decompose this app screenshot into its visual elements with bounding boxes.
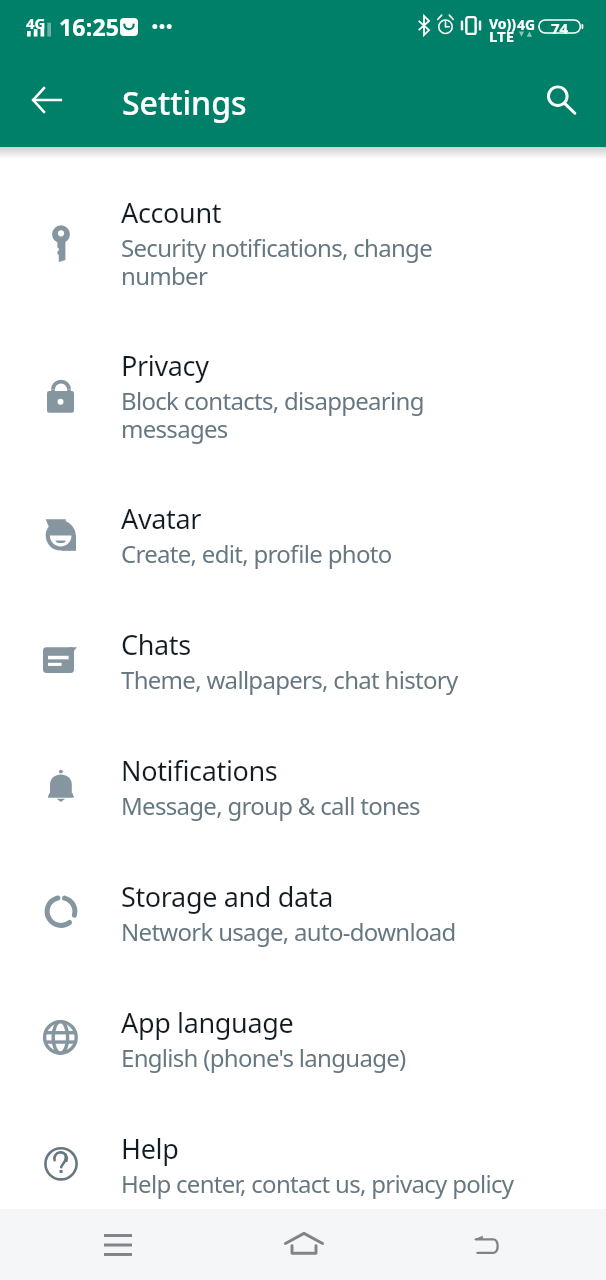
button[interactable]: Help (0, 1102, 606, 1209)
button[interactable]: Storage and data (0, 850, 606, 976)
staticText: App language (121, 1004, 294, 1041)
staticText: LTE (489, 26, 515, 46)
staticText: Account (121, 194, 222, 231)
staticText: Security notifications, change number (121, 231, 432, 292)
staticText: 4G (517, 15, 536, 34)
button[interactable]: Chats (0, 598, 606, 724)
staticText: Privacy (121, 347, 209, 384)
staticText: Settings (122, 81, 247, 125)
staticText: Message, group & call tones (121, 789, 420, 822)
button[interactable]: Back (19, 72, 75, 128)
staticText: Help (121, 1130, 179, 1167)
staticText: 74 (551, 18, 569, 35)
button[interactable]: Account (0, 166, 606, 319)
staticText: Storage and data (121, 878, 334, 915)
staticText: Network usage, auto-download (121, 915, 456, 948)
staticText: Theme, wallpapers, chat history (121, 663, 458, 696)
staticText: Chats (121, 626, 191, 663)
button[interactable]: Search (533, 72, 589, 128)
button[interactable]: Privacy (0, 319, 606, 472)
button[interactable]: Avatar (0, 472, 606, 598)
button[interactable]: Notifications (0, 724, 606, 850)
button[interactable]: Back (459, 1209, 515, 1280)
staticText: Help center, contact us, privacy policy (121, 1167, 514, 1200)
staticText: 4G (26, 13, 46, 33)
button[interactable]: Recent apps (90, 1209, 146, 1280)
staticText: Avatar (121, 500, 202, 537)
staticText: 16:25 (59, 11, 120, 42)
staticText: Notifications (121, 752, 278, 789)
button[interactable]: Home (274, 1209, 334, 1280)
staticText: English (phone's language) (121, 1041, 406, 1074)
staticText: Block contacts, disappearing messages (121, 384, 424, 445)
staticText: Vo)) (489, 14, 517, 33)
button[interactable]: App language (0, 976, 606, 1102)
staticText: Create, edit, profile photo (121, 537, 392, 570)
